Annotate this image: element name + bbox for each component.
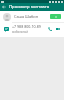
button[interactable]: Сообщение bbox=[3, 26, 9, 32]
staticText: мобильный bbox=[12, 30, 28, 34]
button[interactable]: Фото контакта bbox=[0, 11, 64, 22]
staticText: +7 988 800-10-89 bbox=[12, 24, 41, 29]
button[interactable]: Сообщение bbox=[0, 23, 64, 35]
button[interactable]: Фото контакта bbox=[3, 13, 11, 21]
staticText: Просмотр контакта bbox=[9, 4, 50, 10]
button[interactable]: Видеозвонок bbox=[55, 26, 61, 32]
button[interactable]: Добавить bbox=[50, 14, 61, 19]
staticText: Саша Шабин bbox=[14, 14, 39, 19]
button[interactable]: Back bbox=[0, 3, 8, 11]
button[interactable]: Звонок bbox=[47, 26, 53, 32]
